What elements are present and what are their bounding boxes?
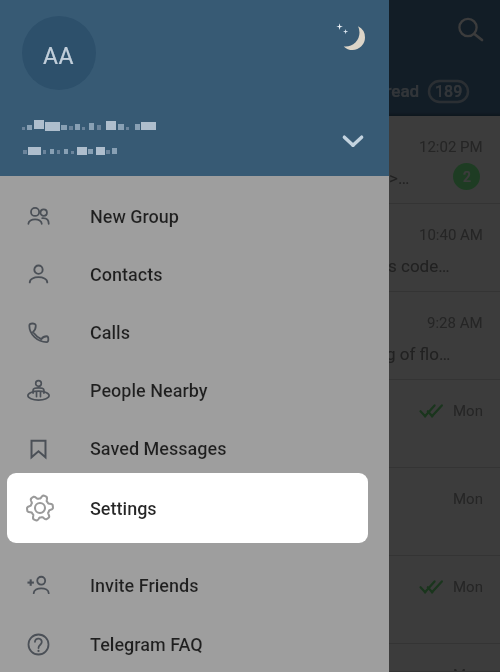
staticText: 10:40 AM xyxy=(419,226,483,244)
button[interactable]: Expand accounts xyxy=(341,129,365,153)
staticText: Contacts xyxy=(90,264,163,285)
button[interactable]: Invite Friends xyxy=(0,556,389,614)
staticText: >… xyxy=(389,168,410,188)
staticText: AA xyxy=(43,43,75,70)
button[interactable]: Mon xyxy=(0,468,500,556)
staticText: Settings xyxy=(90,498,157,519)
button[interactable]: Calls xyxy=(0,303,389,361)
staticText: Mon xyxy=(453,666,483,672)
button[interactable]: Telegram FAQ xyxy=(0,615,389,672)
button[interactable]: People Nearby xyxy=(0,361,389,419)
button[interactable]: 10:40 AM xyxy=(0,204,500,292)
button[interactable]: Mon xyxy=(0,380,500,468)
staticText: Mon xyxy=(453,490,483,508)
button[interactable]: Mon xyxy=(0,644,500,672)
staticText: People Nearby xyxy=(90,380,208,401)
button[interactable]: Mon xyxy=(0,556,500,644)
button[interactable]: Contacts xyxy=(0,245,389,303)
button[interactable]: New Group xyxy=(0,187,389,245)
staticText: New Group xyxy=(90,206,179,227)
button[interactable]: Settings xyxy=(7,473,368,543)
staticText: Telegram FAQ xyxy=(90,634,203,655)
button[interactable]: Saved Messages xyxy=(0,419,389,477)
staticText: Saved Messages xyxy=(90,438,227,459)
staticText: 189 xyxy=(435,82,463,101)
button[interactable]: 9:28 AM xyxy=(0,292,500,380)
button[interactable]: 189 xyxy=(429,81,468,102)
staticText: Mon xyxy=(453,578,483,596)
staticText: 12:02 PM xyxy=(419,138,483,156)
staticText: s code… xyxy=(388,256,450,276)
button[interactable]: 12:02 PM xyxy=(0,116,500,204)
staticText: 2 xyxy=(463,169,471,185)
button[interactable]: Profile photo xyxy=(22,16,96,90)
staticText: nread xyxy=(376,81,420,101)
button[interactable]: Search xyxy=(454,13,486,45)
button[interactable]: Toggle night mode xyxy=(334,22,367,55)
staticText: g of flo… xyxy=(386,344,451,364)
staticText: Mon xyxy=(453,402,483,420)
staticText: Calls xyxy=(90,322,131,343)
staticText: 9:28 AM xyxy=(427,314,483,332)
staticText: Invite Friends xyxy=(90,575,199,596)
